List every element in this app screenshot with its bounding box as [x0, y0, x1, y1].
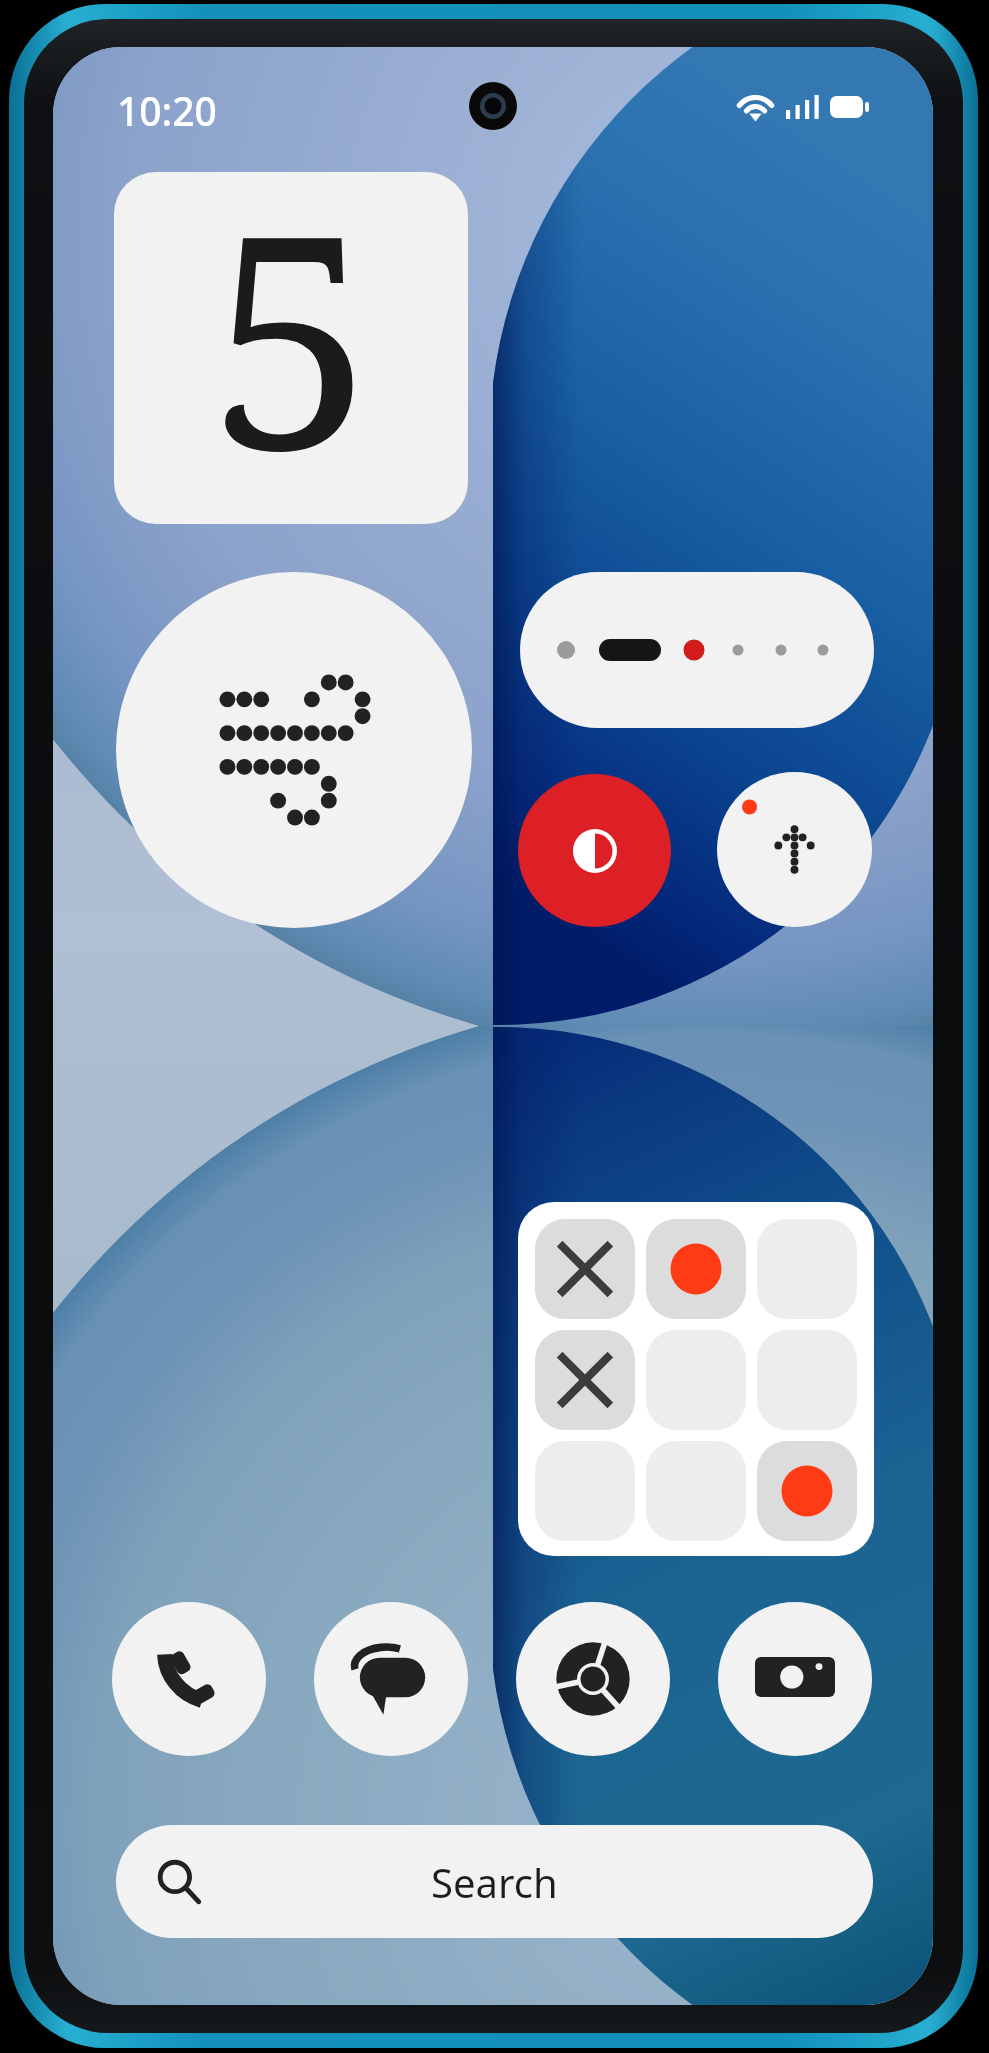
- button[interactable]: Search: [116, 1825, 873, 1938]
- button[interactable]: Camera: [718, 1602, 872, 1756]
- button[interactable]: Navigation: [717, 772, 872, 927]
- button[interactable]: Weather wind: [116, 572, 472, 928]
- staticText: 5: [209, 172, 374, 486]
- button[interactable]: Chrome: [516, 1602, 670, 1756]
- button[interactable]: Phone: [112, 1602, 266, 1756]
- button[interactable]: Recorder levels: [520, 572, 874, 728]
- button[interactable]: Contrast: [518, 774, 671, 927]
- button[interactable]: 5: [114, 172, 468, 524]
- staticText: Search: [431, 1855, 558, 1909]
- staticText: 10:20: [117, 84, 217, 137]
- button[interactable]: Messages: [314, 1602, 468, 1756]
- button[interactable]: Tic tac toe game: [518, 1202, 874, 1556]
